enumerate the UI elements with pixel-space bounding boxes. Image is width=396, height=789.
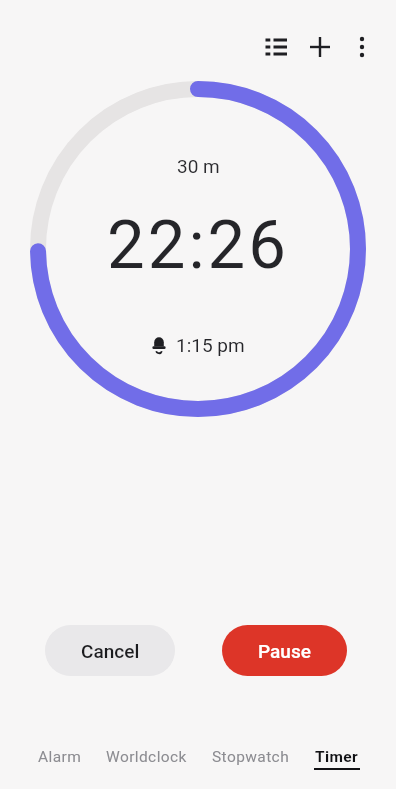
staticText: 1:15 pm [176,334,245,356]
staticText: 22:26 [107,206,289,285]
button[interactable] [254,25,298,69]
button[interactable]: Cancel [45,625,175,676]
button[interactable]: Timer [314,748,360,770]
staticText: Alarm [38,748,82,766]
staticText: Stopwatch [212,748,290,766]
button[interactable]: Pause [222,625,347,676]
staticText: Pause [258,640,311,662]
button[interactable] [298,25,342,69]
staticText: Cancel [81,640,140,662]
staticText: Timer [315,748,359,766]
button[interactable]: Worldclock [106,748,187,766]
button[interactable]: Stopwatch [212,748,290,766]
button[interactable]: Alarm [38,748,82,766]
button[interactable] [342,27,382,67]
staticText: Worldclock [106,748,187,766]
staticText: 30 m [177,155,220,177]
